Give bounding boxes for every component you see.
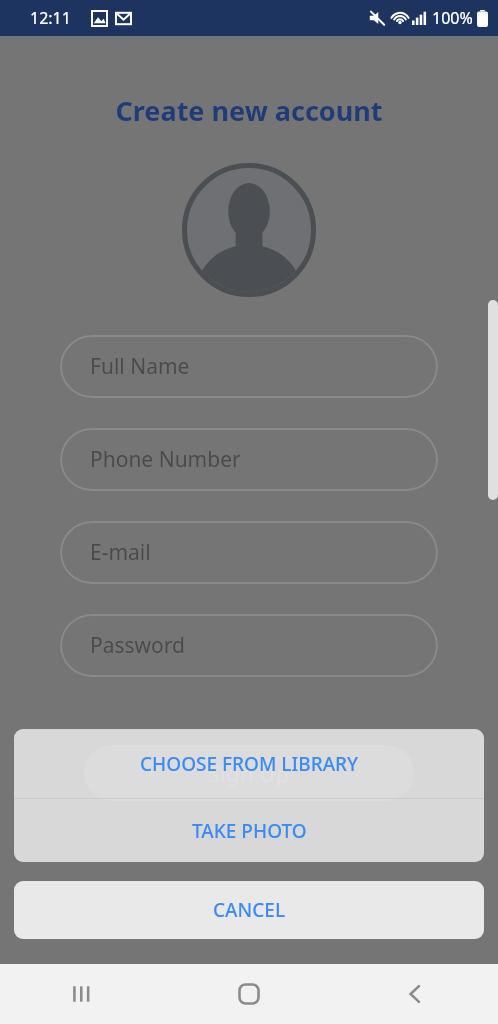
button[interactable]: Profile photo — [182, 163, 316, 297]
staticText: 12:11 — [30, 7, 71, 29]
button[interactable]: Home — [166, 964, 332, 1024]
staticText: Password — [90, 631, 185, 660]
staticText: CHOOSE FROM LIBRARY — [140, 751, 359, 777]
button[interactable]: CHOOSE FROM LIBRARY — [14, 729, 484, 798]
button[interactable]: Phone Number — [60, 428, 438, 491]
button[interactable]: Back — [332, 964, 498, 1024]
staticText: E-mail — [90, 538, 151, 567]
button[interactable]: Recent apps — [0, 964, 166, 1024]
button[interactable]: TAKE PHOTO — [14, 799, 484, 862]
button[interactable]: E-mail — [60, 521, 438, 584]
button[interactable]: Sign Up — [84, 745, 414, 801]
button[interactable]: Full Name — [60, 335, 438, 398]
staticText: TAKE PHOTO — [192, 818, 307, 844]
staticText: Create new account — [0, 92, 498, 129]
button[interactable]: CANCEL — [14, 881, 484, 939]
staticText: Full Name — [90, 352, 190, 381]
staticText: CANCEL — [213, 897, 286, 923]
button[interactable]: Password — [60, 614, 438, 677]
staticText: 100% — [432, 7, 473, 29]
staticText: Phone Number — [90, 445, 241, 474]
staticText: Sign Up — [208, 758, 290, 788]
